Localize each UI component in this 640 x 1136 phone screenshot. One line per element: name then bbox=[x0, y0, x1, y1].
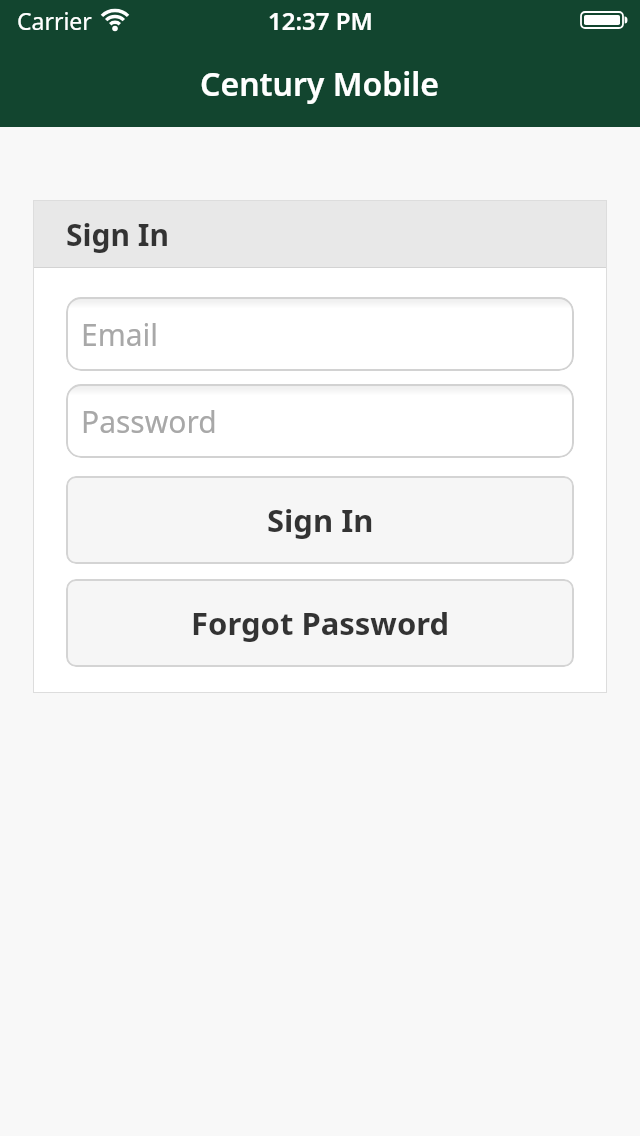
staticText: Forgot Password bbox=[191, 602, 450, 644]
staticText: Sign In bbox=[66, 214, 169, 255]
staticText: Sign In bbox=[267, 499, 374, 541]
staticText: Email bbox=[81, 314, 159, 355]
button[interactable]: Sign In bbox=[66, 476, 574, 564]
button[interactable]: Forgot Password bbox=[66, 579, 574, 667]
staticText: Password bbox=[81, 401, 217, 442]
staticText: 12:37 PM bbox=[268, 4, 373, 37]
staticText: Century Mobile bbox=[200, 62, 440, 106]
button[interactable]: Email bbox=[66, 297, 574, 371]
staticText: Carrier bbox=[17, 5, 92, 36]
button[interactable]: Password bbox=[66, 384, 574, 458]
